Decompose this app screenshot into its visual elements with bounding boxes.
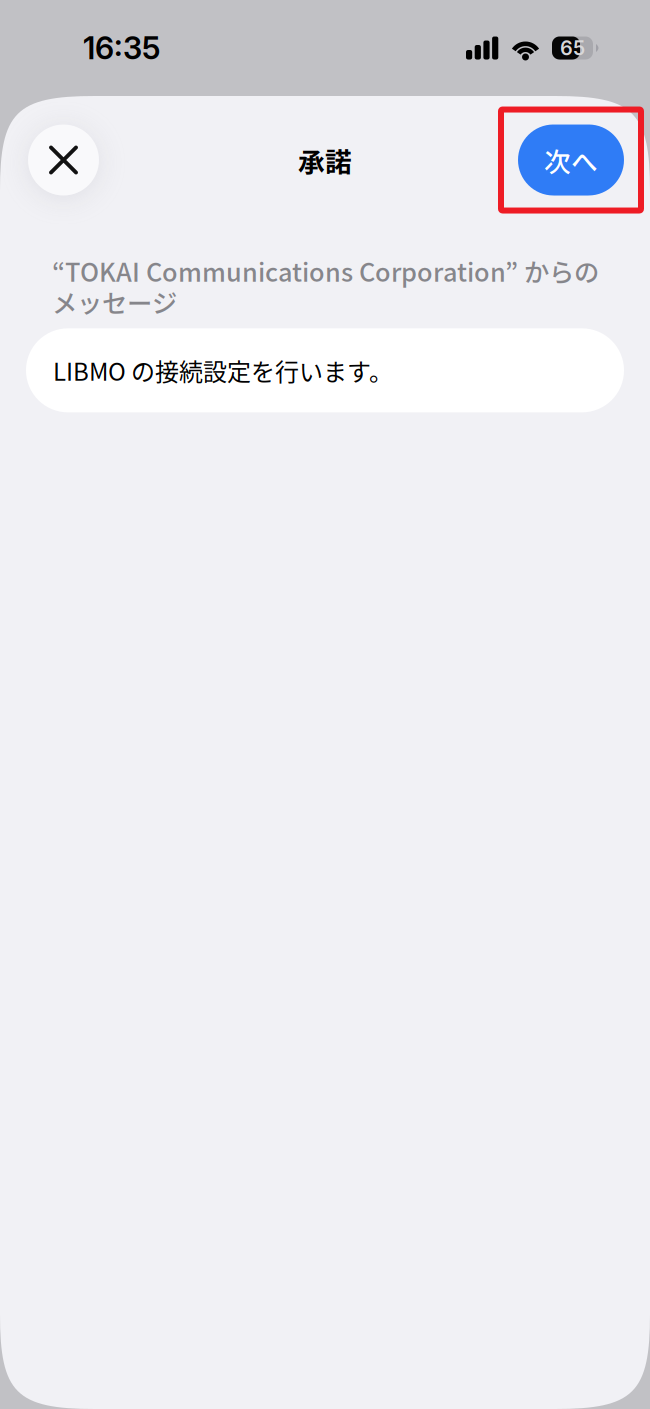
staticText: 承諾 — [298, 141, 352, 179]
staticText: 65 — [560, 36, 585, 60]
staticText: LIBMO の接続設定を行います。 — [53, 353, 393, 388]
staticText: 次へ — [544, 141, 598, 179]
button[interactable]: 次へ — [518, 124, 624, 195]
staticText: “TOKAI Communications Corporation” からのメッ… — [52, 255, 599, 317]
staticText: 16:35 — [83, 29, 160, 66]
button[interactable]: Close — [28, 124, 99, 195]
